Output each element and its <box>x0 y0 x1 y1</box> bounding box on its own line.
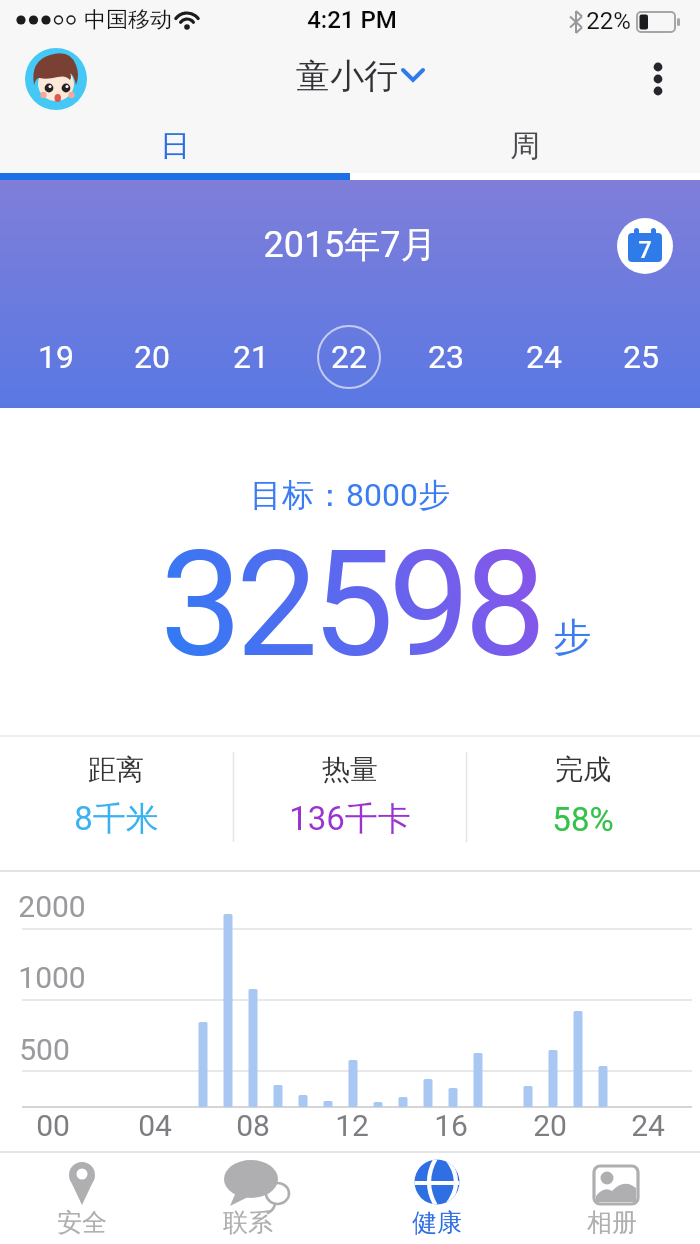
staticText: 周 <box>510 127 540 165</box>
staticText: 距离 <box>88 752 144 787</box>
staticText: 25 <box>623 338 659 376</box>
staticText: 联系 <box>223 1207 273 1238</box>
staticText: 7 <box>638 237 652 264</box>
staticText: 00 <box>36 1108 70 1143</box>
staticText: 16 <box>434 1108 468 1143</box>
staticText: 2000 <box>18 889 86 924</box>
button[interactable] <box>616 217 674 275</box>
button[interactable] <box>640 58 676 102</box>
staticText: 相册 <box>587 1207 637 1238</box>
staticText: 24 <box>526 338 562 376</box>
staticText: 32598 <box>160 520 541 680</box>
staticText: 23 <box>428 338 464 376</box>
staticText: 1000 <box>18 960 86 995</box>
staticText: 20 <box>533 1108 567 1143</box>
staticText: 安全 <box>57 1207 107 1238</box>
staticText: 12 <box>335 1108 369 1143</box>
staticText: 58% <box>552 800 614 839</box>
staticText: 目标：8000步 <box>250 475 450 515</box>
staticText: 2015年7月 <box>263 222 437 267</box>
button[interactable] <box>280 55 440 100</box>
staticText: 8千米 <box>74 798 159 840</box>
staticText: 4:21 PM <box>307 6 397 34</box>
button[interactable] <box>0 120 350 173</box>
button[interactable] <box>24 47 88 111</box>
staticText: 步 <box>553 613 591 661</box>
button[interactable] <box>175 1152 350 1244</box>
staticText: 08 <box>236 1108 270 1143</box>
staticText: 日 <box>160 127 190 165</box>
staticText: 童小行 <box>296 55 398 98</box>
staticText: 22 <box>331 338 367 376</box>
button[interactable] <box>525 1152 700 1244</box>
staticText: 21 <box>233 338 269 376</box>
staticText: 完成 <box>555 752 611 787</box>
button[interactable] <box>350 120 700 173</box>
staticText: 19 <box>38 338 74 376</box>
button[interactable] <box>0 1152 175 1244</box>
staticText: 热量 <box>322 752 378 787</box>
staticText: 20 <box>134 338 170 376</box>
button[interactable] <box>350 1152 525 1244</box>
staticText: 136千卡 <box>289 798 411 840</box>
staticText: 04 <box>138 1108 172 1143</box>
staticText: 健康 <box>412 1207 462 1238</box>
staticText: 中国移动 <box>84 6 172 34</box>
staticText: 500 <box>19 1032 70 1067</box>
staticText: 24 <box>631 1108 665 1143</box>
staticText: 22% <box>586 7 631 35</box>
